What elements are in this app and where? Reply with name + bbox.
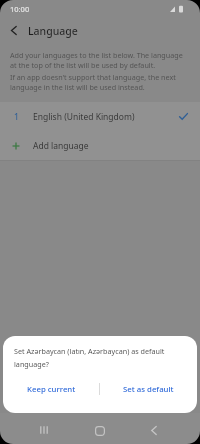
staticText: If an app doesn't support that language,…: [10, 72, 176, 82]
staticText: at the top of the list will be used by d…: [10, 60, 156, 70]
staticText: Language: [28, 24, 78, 38]
staticText: Set as default: [123, 384, 174, 395]
button[interactable]: [146, 422, 162, 438]
staticText: language in the list will be used instea…: [10, 82, 145, 92]
button[interactable]: Language: [0, 17, 200, 44]
button[interactable]: [92, 423, 108, 439]
staticText: Keep current: [27, 384, 76, 395]
staticText: Set Azərbaycan (latın, Azərbaycan) as de…: [14, 346, 165, 356]
button[interactable]: [36, 422, 52, 438]
button[interactable]: 1: [0, 102, 200, 131]
staticText: Add language: [33, 140, 89, 152]
button[interactable]: Keep current: [3, 375, 99, 403]
button[interactable]: Set as default: [100, 375, 197, 403]
staticText: 10:00: [10, 4, 30, 14]
staticText: language?: [14, 359, 49, 369]
staticText: 1: [14, 111, 19, 123]
staticText: Add your languages to the list below. Th…: [10, 50, 183, 60]
button[interactable]: Add language: [0, 131, 200, 160]
staticText: English (United Kingdom): [33, 111, 179, 123]
